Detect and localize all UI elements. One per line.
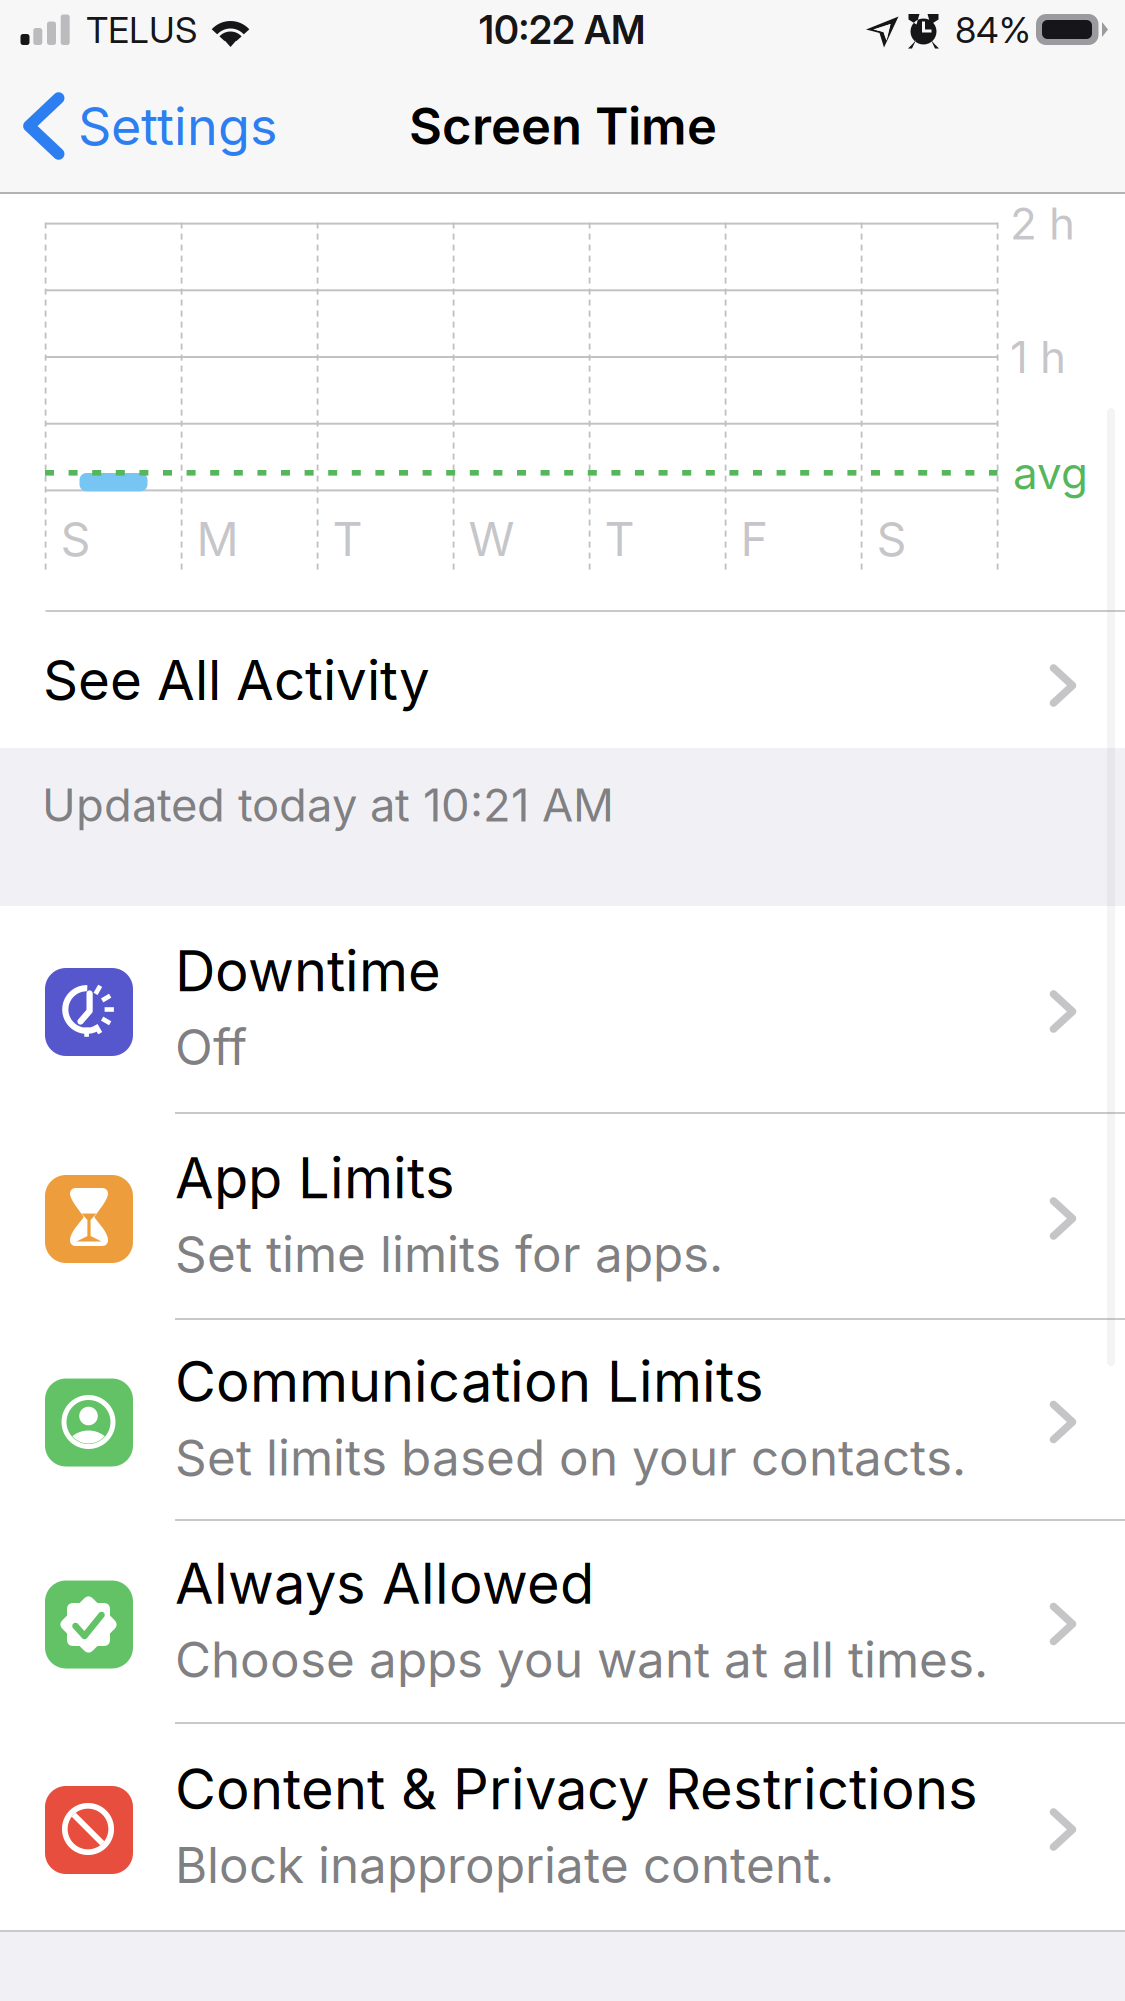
staticText: Set time limits for apps. [175, 1224, 723, 1284]
staticText: Settings [78, 94, 277, 157]
button[interactable]: Content & Privacy Restrictions [0, 1724, 1125, 1930]
staticText: Communication Limits [175, 1348, 764, 1415]
staticText: Screen Time [409, 95, 717, 157]
staticText: S [60, 511, 90, 567]
button[interactable]: Always Allowed [0, 1521, 1125, 1722]
staticText: W [468, 511, 514, 567]
staticText: 2 h [1010, 197, 1075, 250]
button[interactable]: Downtime [0, 906, 1125, 1112]
staticText: F [740, 511, 768, 567]
button[interactable]: Communication Limits [0, 1320, 1125, 1519]
staticText: See All Activity [43, 647, 430, 713]
staticText: Set limits based on your contacts. [175, 1428, 966, 1487]
staticText: T [604, 511, 634, 567]
staticText: Content & Privacy Restrictions [175, 1755, 978, 1823]
staticText: App Limits [175, 1144, 455, 1212]
staticText: Updated today at 10:21 AM [42, 778, 614, 832]
button[interactable]: Settings [0, 70, 300, 192]
staticText: S [876, 511, 906, 567]
staticText: TELUS [86, 8, 197, 52]
staticText: avg [1013, 446, 1088, 500]
staticText: Block inappropriate content. [175, 1835, 834, 1895]
staticText: T [332, 511, 362, 567]
staticText: 10:22 AM [479, 7, 645, 53]
staticText: Always Allowed [175, 1550, 594, 1617]
staticText: Downtime [175, 937, 441, 1005]
staticText: 84% [955, 8, 1031, 52]
staticText: 1 h [1010, 330, 1066, 384]
staticText: M [196, 511, 238, 567]
button[interactable]: App Limits [0, 1114, 1125, 1318]
staticText: Off [175, 1017, 247, 1077]
staticText: Choose apps you want at all times. [175, 1630, 988, 1689]
button[interactable]: See All Activity [0, 612, 1125, 748]
